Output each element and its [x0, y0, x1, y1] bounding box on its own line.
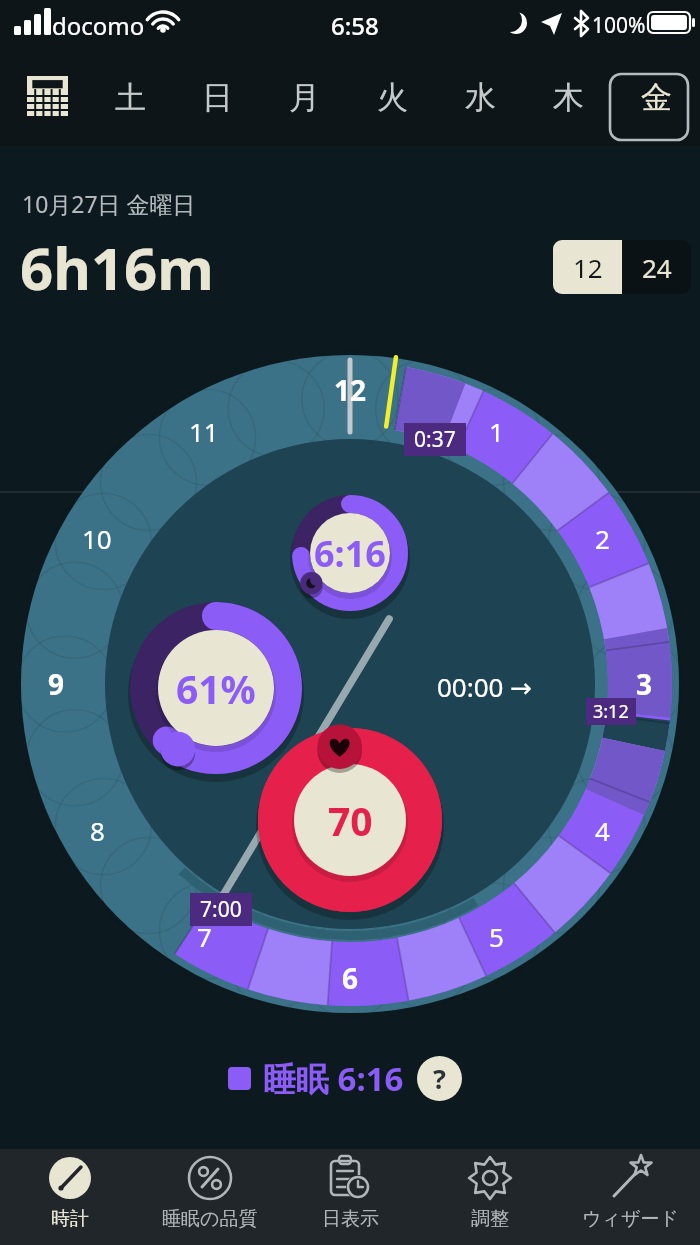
- staticText: 10月27日 金曜日: [22, 188, 196, 219]
- staticText: 4: [595, 813, 610, 848]
- button[interactable]: 12: [553, 240, 622, 294]
- button[interactable]: 61%: [136, 662, 296, 714]
- staticText: 7: [197, 919, 212, 954]
- staticText: 金: [641, 78, 672, 117]
- staticText: 6: [342, 959, 359, 997]
- staticText: ?: [433, 1060, 446, 1097]
- staticText: 日表示: [322, 1207, 379, 1231]
- button[interactable]: 木: [524, 48, 612, 146]
- staticText: 70: [328, 794, 373, 846]
- button[interactable]: Calendar: [0, 48, 87, 146]
- staticText: 6:58: [331, 9, 379, 42]
- button[interactable]: 睡眠 6:16: [228, 1053, 478, 1103]
- staticText: 1: [489, 414, 504, 449]
- staticText: 水: [465, 78, 496, 117]
- button[interactable]: 金: [623, 62, 689, 132]
- staticText: 睡眠の品質: [162, 1207, 258, 1231]
- staticText: 2: [595, 521, 610, 556]
- staticText: 11: [189, 414, 219, 449]
- button[interactable]: 土: [87, 48, 174, 146]
- staticText: 3:12: [593, 699, 629, 724]
- button[interactable]: 日: [174, 48, 261, 146]
- staticText: 8: [90, 813, 105, 848]
- staticText: 12: [573, 250, 603, 285]
- staticText: 100%: [592, 11, 646, 40]
- button[interactable]: 月: [261, 48, 348, 146]
- staticText: 6h16m: [20, 228, 214, 304]
- staticText: 10: [82, 521, 112, 556]
- staticText: 7:00: [200, 895, 242, 924]
- staticText: 12: [334, 371, 367, 409]
- button[interactable]: Day view: [280, 1149, 420, 1245]
- staticText: ウィザード: [582, 1207, 679, 1231]
- button[interactable]: Help: [417, 1056, 462, 1101]
- button[interactable]: 火: [348, 48, 436, 146]
- button[interactable]: 24: [622, 240, 691, 294]
- staticText: 3: [636, 665, 653, 703]
- button[interactable]: 70: [280, 794, 420, 846]
- button[interactable]: 6:16: [280, 527, 420, 579]
- staticText: 61%: [176, 662, 256, 714]
- staticText: 9: [48, 665, 65, 703]
- staticText: 月: [289, 78, 320, 117]
- staticText: 木: [553, 78, 584, 117]
- staticText: 睡眠 6:16: [263, 1056, 404, 1101]
- staticText: 土: [115, 78, 146, 117]
- staticText: 時計: [51, 1207, 89, 1231]
- staticText: 5: [489, 919, 504, 954]
- staticText: docomo: [52, 9, 145, 42]
- staticText: 調整: [471, 1207, 509, 1231]
- staticText: 0:37: [414, 425, 456, 454]
- button[interactable]: Settings: [420, 1149, 560, 1245]
- staticText: 6:16: [314, 529, 386, 578]
- button[interactable]: Wizard: [560, 1149, 700, 1245]
- staticText: 00:00 →: [437, 669, 533, 704]
- button[interactable]: 水: [436, 48, 524, 146]
- staticText: 日: [202, 78, 233, 117]
- button[interactable]: Clock: [0, 1149, 140, 1245]
- button[interactable]: Sleep quality: [140, 1149, 280, 1245]
- staticText: 24: [642, 250, 672, 285]
- staticText: 火: [377, 78, 408, 117]
